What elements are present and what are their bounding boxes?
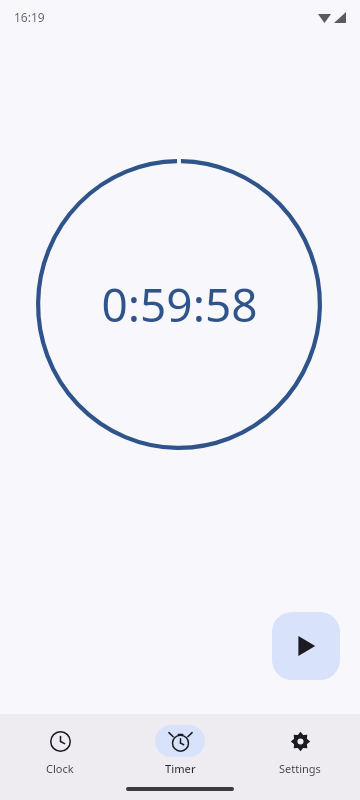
staticText: 0:59:58: [101, 273, 258, 336]
staticText: 16:19: [14, 9, 45, 25]
staticText: Timer: [165, 761, 196, 776]
button[interactable]: Start timer: [272, 612, 340, 680]
button[interactable]: Timer: [120, 714, 240, 776]
button[interactable]: Settings: [240, 714, 360, 776]
button[interactable]: Clock: [0, 714, 120, 776]
staticText: Clock: [46, 761, 74, 776]
staticText: Settings: [279, 761, 321, 776]
